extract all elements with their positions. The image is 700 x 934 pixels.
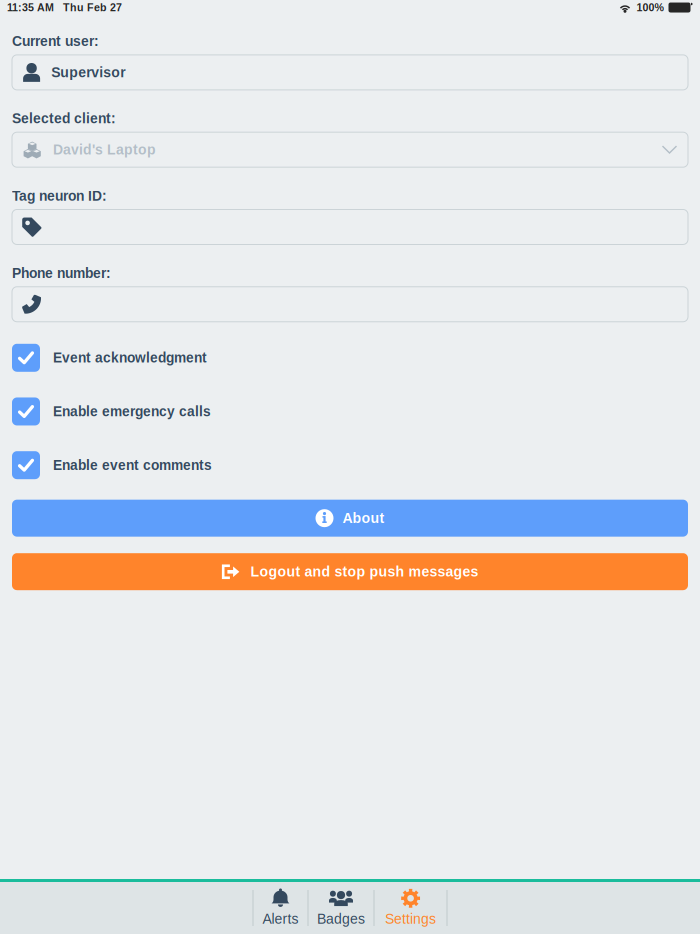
button[interactable]: David's Laptop	[12, 132, 688, 167]
staticText: 11:35 AM	[7, 1, 54, 13]
staticText: Alerts	[262, 911, 298, 927]
staticText: 100%	[636, 1, 663, 13]
staticText: Settings	[385, 911, 436, 927]
staticText: Event acknowledgment	[53, 350, 207, 365]
button[interactable]: About	[12, 500, 688, 537]
button[interactable]: Enable event comments	[12, 451, 688, 479]
staticText: Enable event comments	[53, 457, 212, 473]
staticText: Enable emergency calls	[53, 404, 211, 419]
button[interactable]: Event acknowledgment	[12, 344, 688, 372]
button[interactable]: Badges	[308, 888, 373, 928]
staticText: Badges	[317, 911, 365, 927]
staticText: Phone number:	[12, 265, 111, 281]
staticText: Selected client:	[12, 111, 116, 126]
button[interactable]: Settings	[374, 888, 446, 928]
staticText: Supervisor	[51, 65, 125, 80]
staticText: Current user:	[12, 33, 99, 49]
button[interactable]: Alerts	[253, 888, 307, 928]
button[interactable]: Enable emergency calls	[12, 397, 688, 425]
staticText: Thu Feb 27	[63, 1, 122, 13]
staticText: About	[342, 510, 384, 526]
button[interactable]: Logout and stop push messages	[12, 553, 688, 590]
staticText: Tag neuron ID:	[12, 188, 107, 204]
staticText: Logout and stop push messages	[250, 564, 478, 580]
staticText: David's Laptop	[53, 142, 156, 157]
